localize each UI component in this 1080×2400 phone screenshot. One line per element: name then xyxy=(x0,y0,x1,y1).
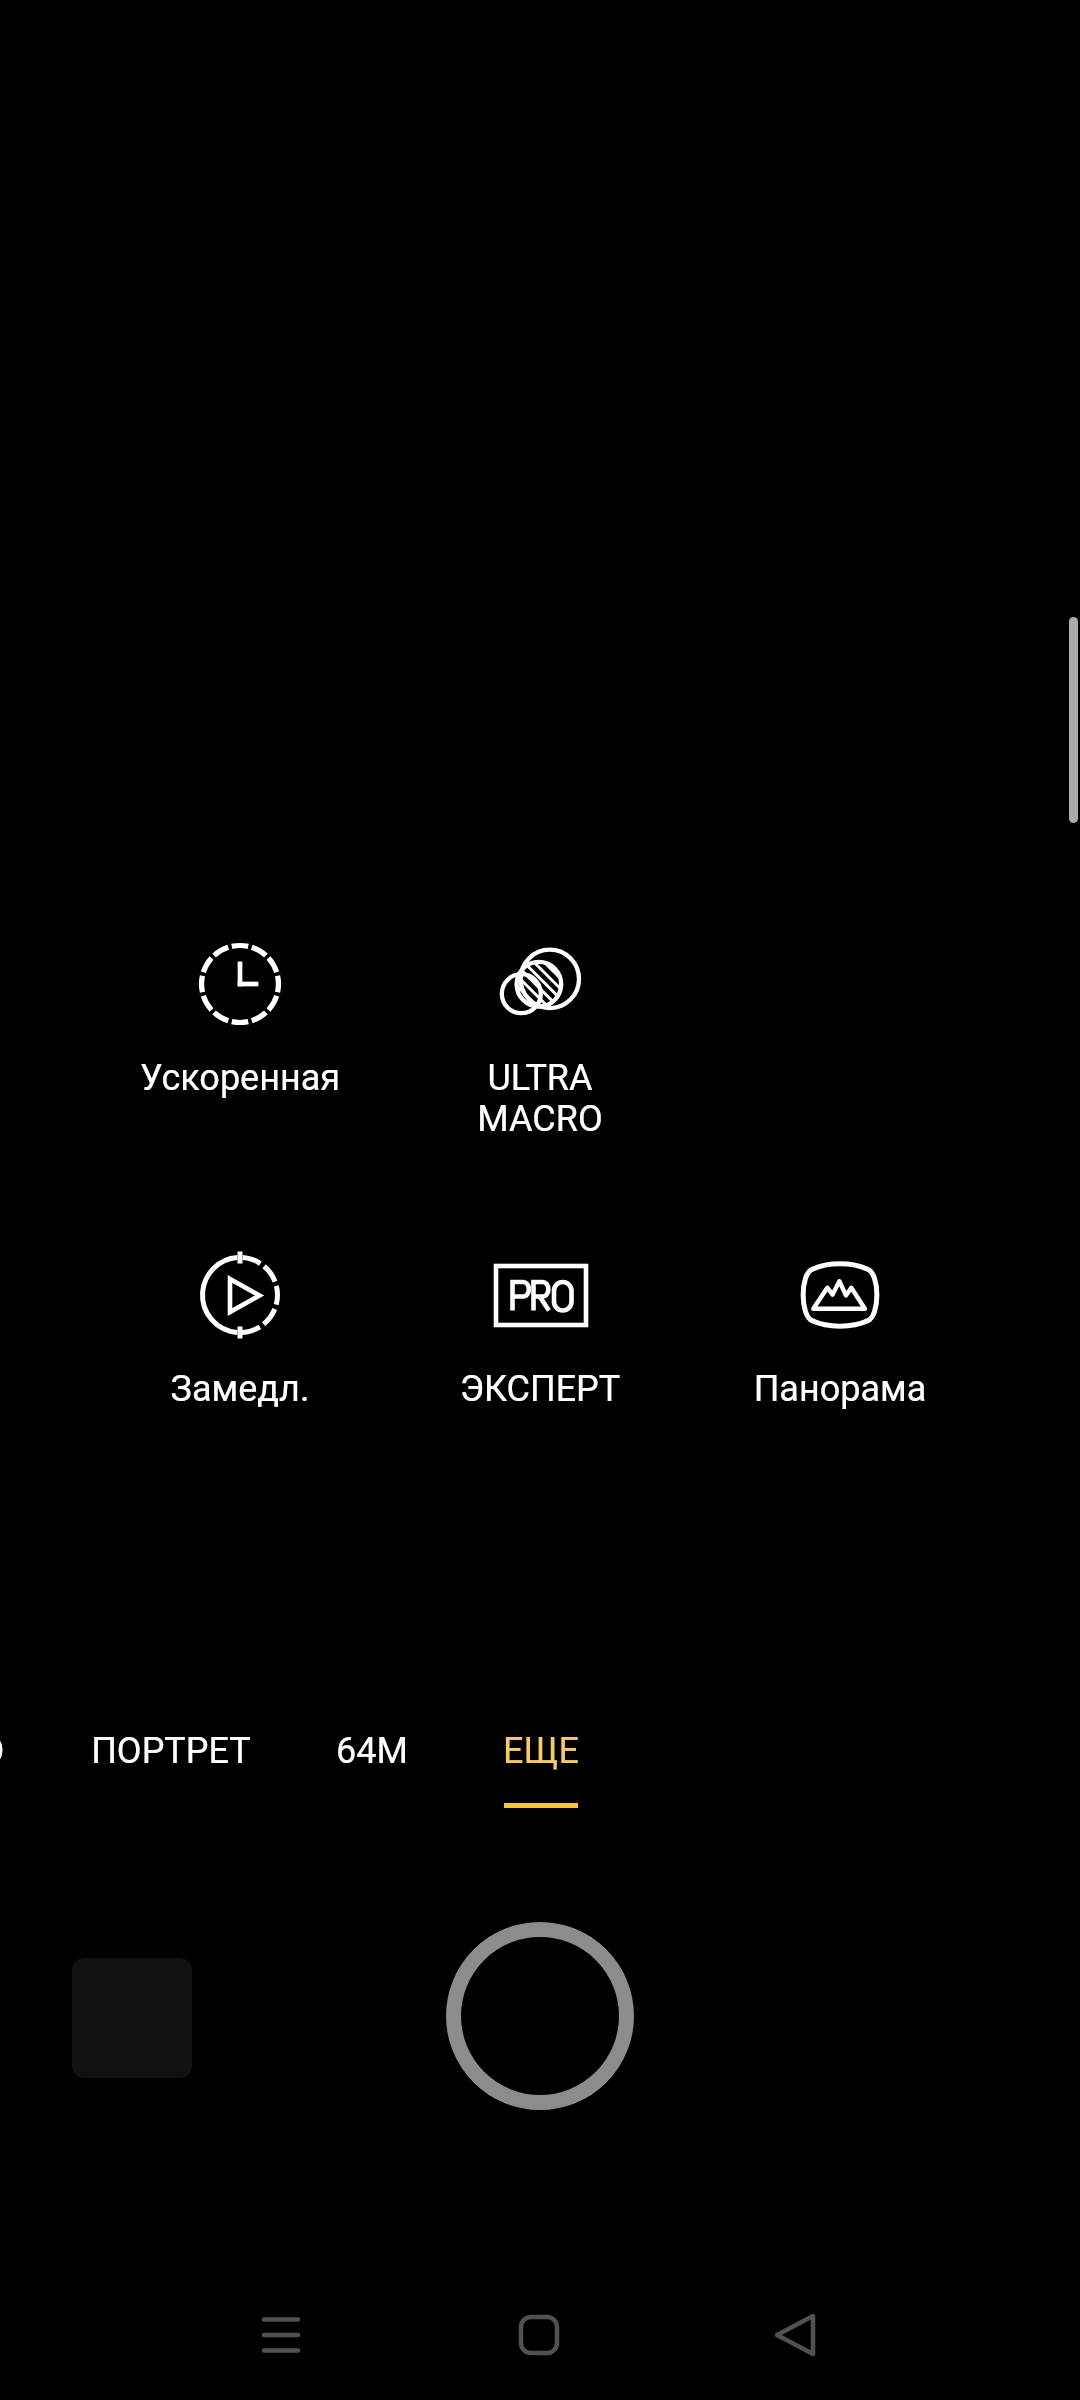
button[interactable]: Back xyxy=(753,2281,837,2365)
staticText: Замедл. xyxy=(90,1368,390,1410)
button[interactable]: Recent apps xyxy=(239,2281,323,2365)
button[interactable]: ULTRA MACRO xyxy=(390,934,690,1140)
button[interactable]: ЕЩЕ xyxy=(441,1730,641,1808)
button[interactable]: Shutter xyxy=(444,1920,636,2112)
staticText: ULTRA MACRO xyxy=(390,1057,690,1140)
button[interactable]: 64M xyxy=(272,1730,472,1772)
staticText: ЭКСПЕРТ xyxy=(390,1368,690,1410)
button[interactable]: ПОРТРЕТ xyxy=(71,1730,271,1772)
staticText: Панорама xyxy=(690,1368,990,1410)
button[interactable]: ВИДЕО xyxy=(0,1730,44,1772)
button[interactable]: ЭКСПЕРТ xyxy=(390,1245,690,1410)
button[interactable]: Панорама xyxy=(690,1245,990,1410)
button[interactable]: Home xyxy=(497,2281,581,2365)
staticText: Ускоренная xyxy=(90,1057,390,1099)
staticText: ВИДЕО xyxy=(0,1730,44,1772)
staticText: 64M xyxy=(272,1730,472,1772)
button[interactable]: Ускоренная xyxy=(90,934,390,1099)
staticText: ПОРТРЕТ xyxy=(71,1730,271,1772)
button[interactable]: Замедл. xyxy=(90,1245,390,1410)
staticText: ЕЩЕ xyxy=(441,1730,641,1772)
